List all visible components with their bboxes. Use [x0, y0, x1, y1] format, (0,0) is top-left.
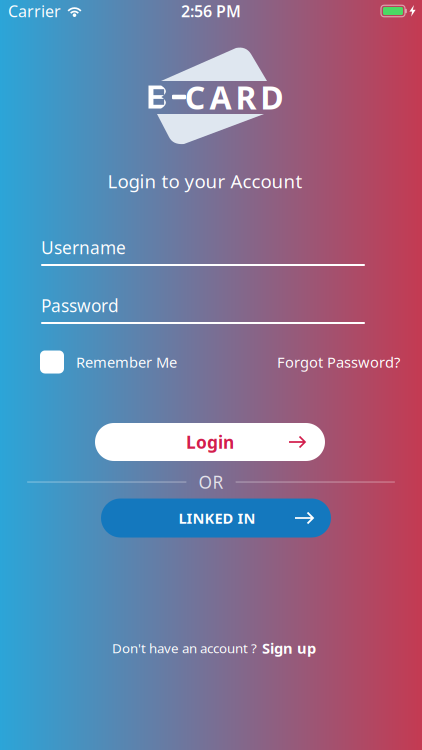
staticText: Login to your Account [107, 169, 302, 193]
staticText: OR [198, 470, 223, 493]
button[interactable]: Don't have an account ? [112, 638, 316, 658]
staticText: Password [41, 294, 119, 317]
staticText: D [260, 76, 283, 118]
staticText: Remember Me [76, 352, 177, 372]
button[interactable]: Forgot Password? [277, 352, 400, 372]
staticText: Don't have an account ? [112, 639, 257, 657]
button[interactable]: Remember Me [40, 350, 177, 373]
staticText: Sign up [262, 638, 316, 658]
staticText: Login [186, 430, 234, 453]
staticText: Carrier [8, 0, 61, 22]
staticText: C [185, 76, 206, 118]
staticText: 2:56 PM [181, 0, 241, 22]
staticText: Forgot Password? [277, 352, 400, 372]
staticText: LINKED IN [178, 508, 255, 528]
staticText: Username [41, 236, 126, 259]
button[interactable]: LINKED IN [101, 498, 331, 537]
staticText: R [235, 76, 256, 118]
staticText: A [210, 76, 232, 118]
button[interactable]: Login [95, 423, 325, 461]
